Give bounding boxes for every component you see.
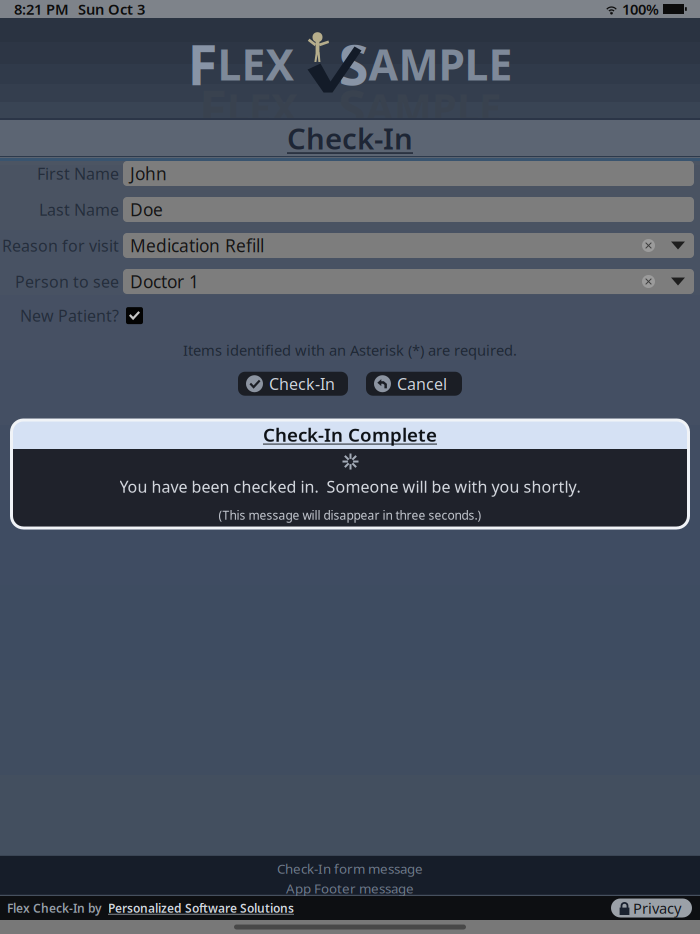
staticText: Check-In form message <box>277 860 423 877</box>
staticText: LEX <box>227 80 298 133</box>
staticText: S <box>338 73 366 141</box>
staticText: Check-In <box>269 373 335 394</box>
staticText: Personalized Software Solutions <box>108 900 294 916</box>
staticText: (This message will disappear in three se… <box>218 507 481 523</box>
button[interactable]: Cancel <box>366 372 462 396</box>
staticText: Doctor 1 <box>130 270 199 293</box>
staticText <box>294 36 338 92</box>
staticText: You have been checked in. Someone will b… <box>119 476 580 497</box>
staticText: Person to see <box>15 271 119 292</box>
button[interactable]: Doctor 1 <box>123 269 694 294</box>
staticText: Privacy <box>633 898 681 918</box>
staticText: AMPLE <box>368 36 512 92</box>
button[interactable]: Medication Refill <box>123 233 694 258</box>
staticText: Check-In <box>287 118 413 157</box>
staticText: Items identified with an Asterisk (*) ar… <box>183 340 517 360</box>
staticText: LEX <box>217 36 294 92</box>
button[interactable]: Privacy <box>611 898 692 917</box>
staticText: Medication Refill <box>130 234 264 257</box>
staticText: Doe <box>130 198 163 221</box>
staticText: F <box>187 28 217 100</box>
staticText: 100% <box>622 0 659 19</box>
button[interactable]: New Patient <box>126 307 143 324</box>
staticText: Cancel <box>397 373 447 394</box>
staticText: 8:21 PM <box>14 0 69 19</box>
staticText: Last Name <box>39 199 119 220</box>
staticText: AMPLE <box>366 80 501 133</box>
staticText: New Patient? <box>20 305 119 326</box>
staticText: Sun Oct 3 <box>78 0 145 19</box>
staticText: S <box>338 28 368 100</box>
staticText: John <box>130 162 167 185</box>
staticText: F <box>199 73 227 141</box>
staticText: Flex Check-In by <box>7 900 102 916</box>
button[interactable]: Personalized Software Solutions <box>108 900 294 916</box>
staticText <box>298 80 338 133</box>
staticText: Check-In Complete <box>263 422 437 447</box>
staticText: App Footer message <box>286 879 414 897</box>
staticText: Reason for visit <box>2 235 119 256</box>
button[interactable]: Check-In <box>238 372 348 396</box>
staticText: First Name <box>37 163 119 184</box>
